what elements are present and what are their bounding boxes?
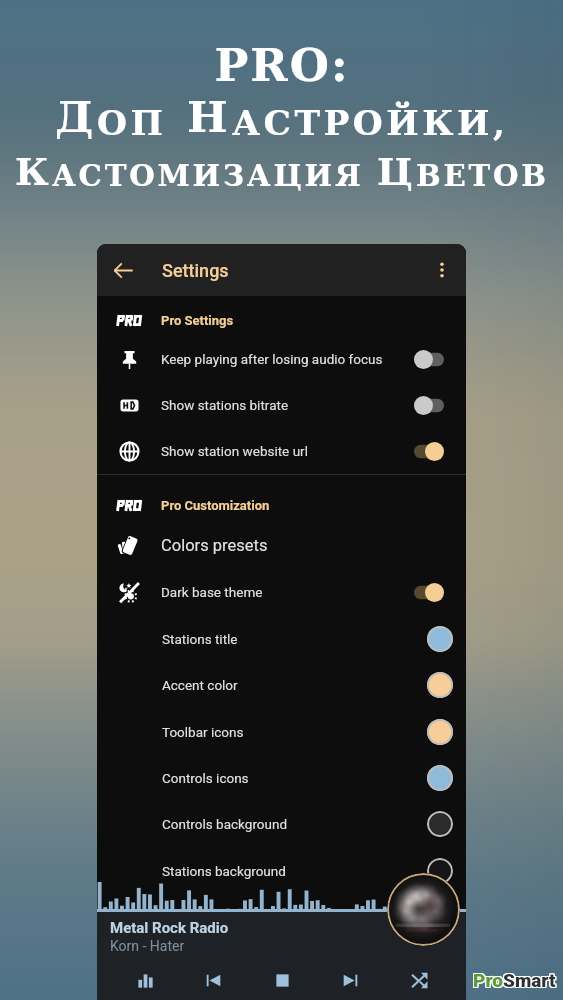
staticText: ProSmart [472, 969, 555, 991]
staticText: Smart [503, 969, 556, 991]
button[interactable]: Album art [387, 873, 460, 946]
staticText: Controls icons [162, 770, 427, 786]
staticText: Dark base theme [161, 584, 414, 600]
button[interactable]: Accent color [97, 662, 466, 708]
staticText: Stations title [162, 631, 427, 647]
button[interactable]: Back [103, 250, 143, 290]
staticText: ProSmart [474, 969, 557, 991]
staticText: Settings [162, 260, 229, 281]
staticText: ProSmart [474, 970, 557, 992]
button[interactable]: Controls background [97, 801, 466, 847]
button[interactable]: Dark base theme [97, 568, 466, 616]
staticText: Pro [473, 969, 503, 991]
staticText: ОП [97, 103, 167, 143]
button[interactable]: Stations background [97, 847, 466, 894]
button[interactable]: Stop [261, 960, 303, 1000]
staticText: Ц [377, 150, 416, 193]
staticText: ProSmart [473, 968, 556, 990]
staticText: ВЕТОВ [416, 159, 549, 193]
button[interactable]: Previous [192, 960, 234, 1000]
staticText: Н [187, 92, 232, 143]
staticText: Show station website url [161, 443, 414, 459]
staticText: Metal Rock Radio [110, 919, 229, 937]
button[interactable]: Equalizer [124, 960, 166, 1000]
button[interactable]: Next [329, 960, 371, 1000]
staticText: Toolbar icons [162, 724, 427, 740]
staticText: Keep playing after losing audio focus [161, 351, 414, 367]
staticText: Stations background [162, 863, 427, 879]
staticText: PRO: [214, 39, 350, 87]
staticText: ProSmart [472, 970, 555, 992]
staticText: Korn - Hater [110, 938, 185, 954]
staticText: Accent color [162, 677, 427, 693]
staticText: Controls background [162, 816, 427, 832]
button[interactable]: Shuffle [398, 960, 440, 1000]
staticText: Pro Customization [161, 498, 270, 513]
button[interactable]: Stations title [97, 616, 466, 662]
staticText: К [15, 150, 52, 193]
button[interactable]: More options [422, 250, 462, 290]
staticText: Д [55, 92, 97, 143]
staticText: Show stations bitrate [161, 397, 414, 413]
staticText: Colors presets [161, 536, 444, 555]
staticText: АСТРОЙКИ, [232, 103, 509, 143]
staticText: ProSmart [474, 968, 557, 990]
staticText: Pro Settings [161, 313, 234, 328]
button[interactable]: Show stations bitrate [97, 382, 466, 428]
staticText: ProSmart [472, 968, 555, 990]
button[interactable]: Controls icons [97, 755, 466, 801]
staticText: АСТОМИЗАЦИЯ [52, 159, 364, 193]
button[interactable]: Colors presets [97, 522, 466, 568]
button[interactable]: Toolbar icons [97, 708, 466, 755]
staticText: ProSmart [473, 970, 556, 992]
button[interactable]: Keep playing after losing audio focus [97, 336, 466, 382]
button[interactable]: Show station website url [97, 428, 466, 474]
